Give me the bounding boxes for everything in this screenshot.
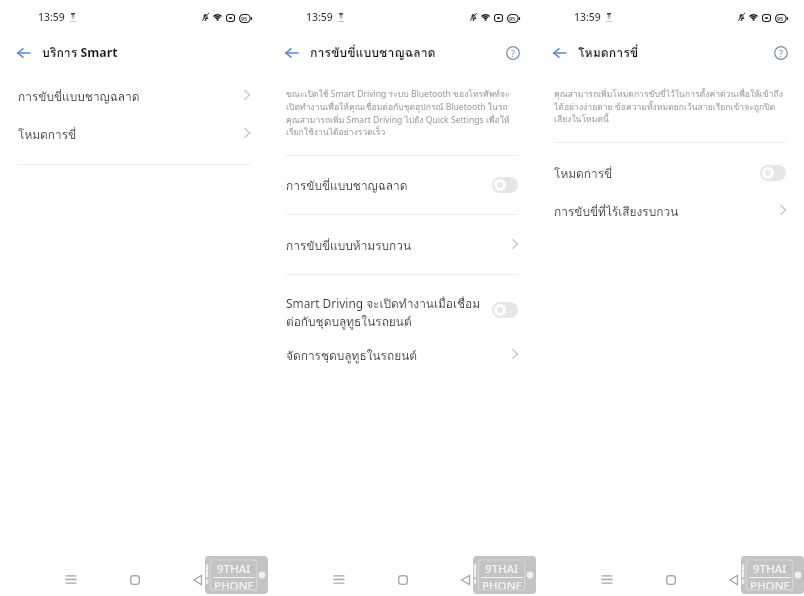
staticText: โหมดการขี่ [578,43,639,63]
staticText: Smart Driving จะเปิดทำงานเมื่อเชื่อมต่อก… [286,294,484,331]
staticText: ? [779,47,783,59]
button[interactable]: Back [453,567,478,592]
staticText: 9THAI [753,561,787,577]
button[interactable]: Back [546,40,572,66]
button[interactable]: Back [185,567,210,592]
button[interactable] [268,215,536,274]
staticText: บริการ Smart [42,43,118,63]
button[interactable]: Home [122,567,147,592]
button[interactable] [0,115,268,153]
staticText: ? [511,47,515,59]
staticText: โหมดการขี่ [554,164,613,183]
staticText: PHONE [214,578,254,589]
button[interactable]: Recent apps [58,567,83,592]
staticText: การขับขี่แบบห้ามรบกวน [286,236,412,255]
button[interactable] [536,143,804,191]
button[interactable]: Toggle switch [492,177,518,193]
button[interactable]: Back [721,567,746,592]
staticText: การขับขี่แบบชาญฉลาด [18,87,140,106]
staticText: จัดการชุดบลูทูธในรถยนต์ [286,346,418,365]
staticText: 95 [509,15,516,22]
button[interactable] [268,156,536,214]
staticText: การขับขี่ที่ไร้เสียงรบกวน [554,202,679,221]
button[interactable]: Toggle switch [492,302,518,318]
button[interactable] [0,77,268,115]
staticText: คุณสามารถเพิ่มโหมดการขับขี่ไว้ในการตั้งค… [554,87,786,126]
staticText: 9THAI [217,561,251,577]
button[interactable] [536,191,804,231]
staticText: ขณะเปิดใช้ Smart Driving ระบบ Bluetooth … [286,87,512,139]
staticText: 9THAI [485,561,519,577]
staticText: โหมดการขี่ [18,125,77,144]
button[interactable]: Toggle switch [760,165,786,181]
button[interactable]: Help [500,40,526,66]
button[interactable]: Help [768,40,794,66]
staticText: PHONE [482,578,522,589]
staticText: การขับขี่แบบชาญฉลาด [286,176,408,195]
button[interactable]: Home [390,567,415,592]
button[interactable]: Recent apps [594,567,619,592]
button[interactable]: Home [658,567,683,592]
staticText: PHONE [750,578,790,589]
button[interactable]: Back [278,40,304,66]
button[interactable]: Back [10,40,36,66]
staticText: 13:59 [574,10,601,24]
button[interactable]: Recent apps [326,567,351,592]
staticText: 13:59 [38,10,65,24]
staticText: การขับขี่แบบชาญฉลาด [310,43,436,63]
staticText: 95 [777,15,784,22]
button[interactable] [268,275,536,333]
button[interactable] [268,333,536,375]
staticText: 13:59 [306,10,333,24]
staticText: 95 [241,15,248,22]
